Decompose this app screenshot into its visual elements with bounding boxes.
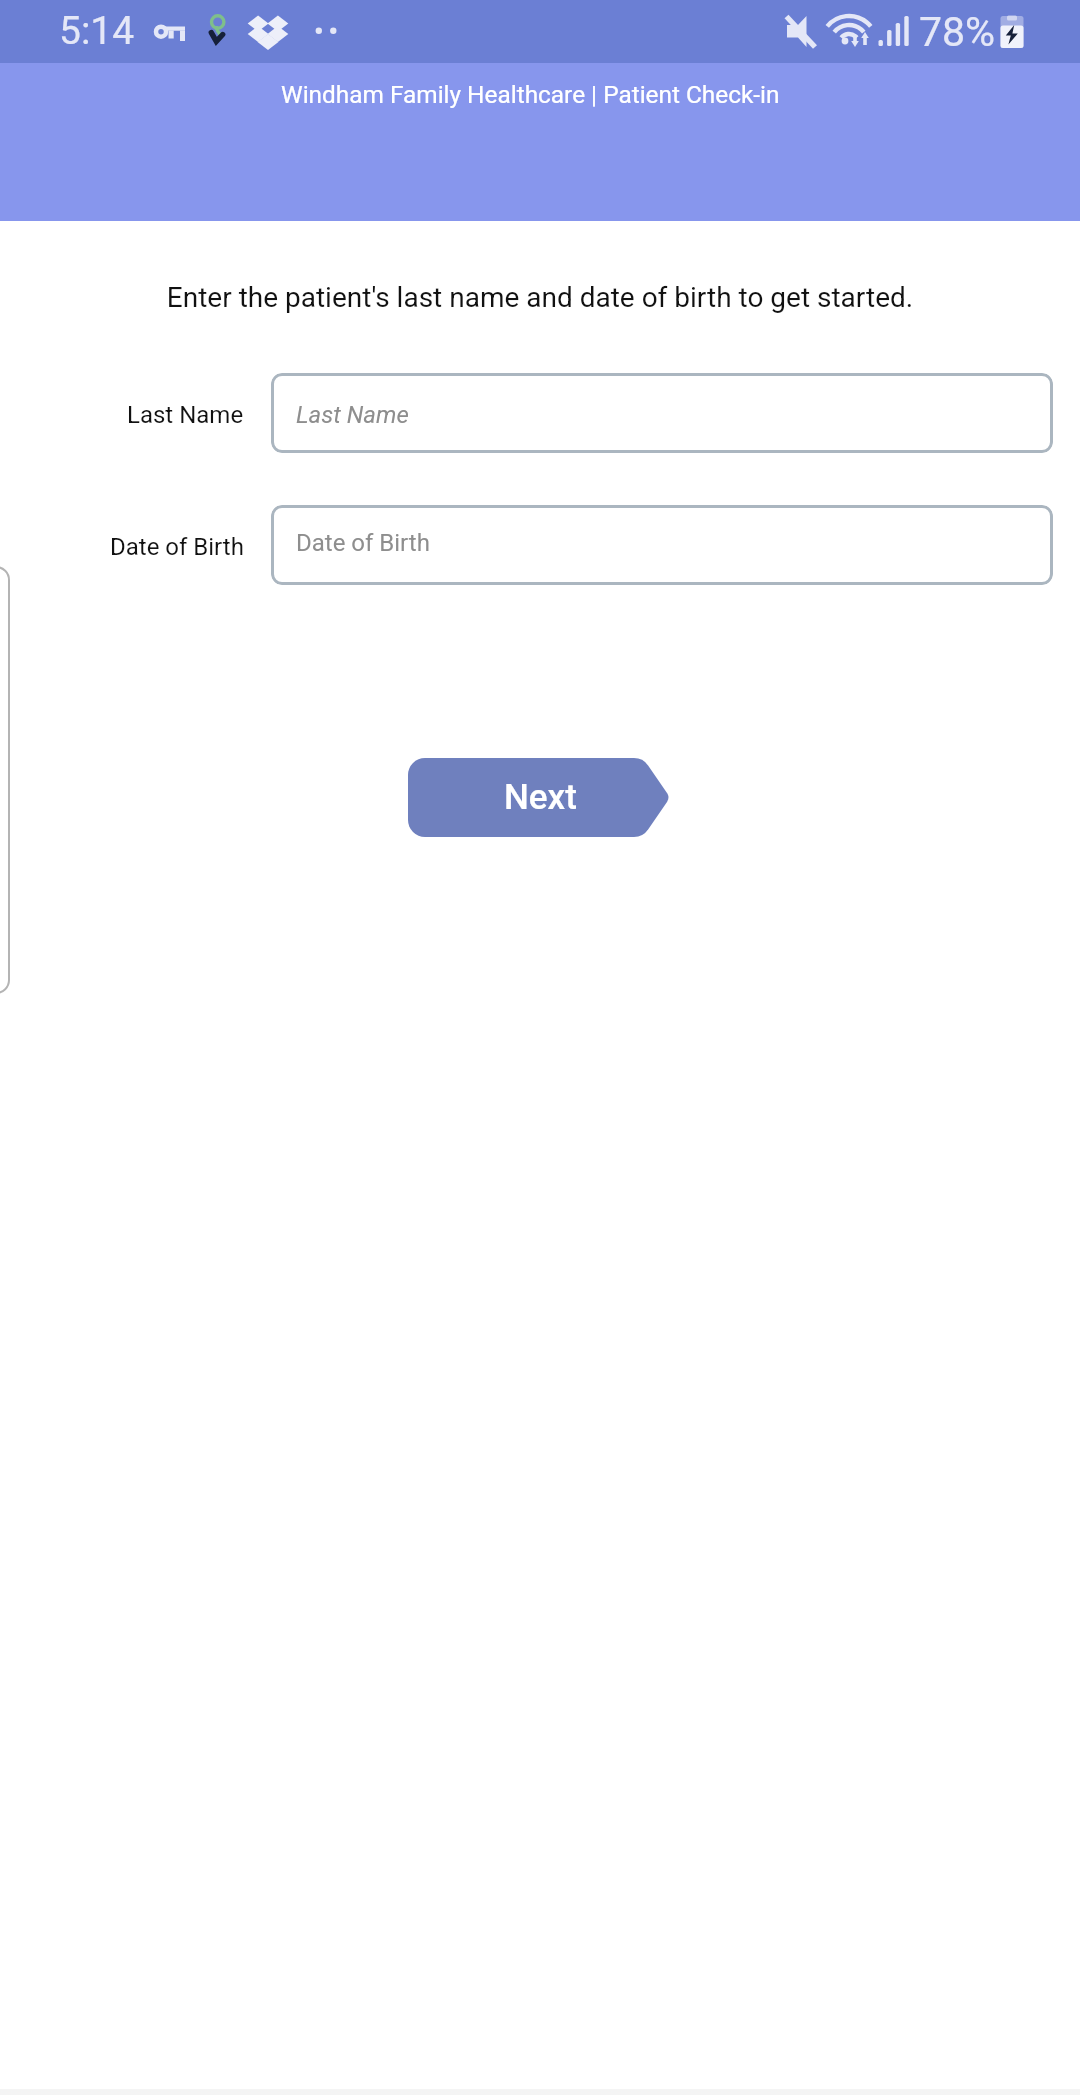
button[interactable]: Last Name: [271, 373, 1053, 453]
button[interactable]: Windham Family Healthcare | Patient Chec…: [0, 63, 1080, 221]
staticText: Last Name: [127, 401, 244, 429]
button[interactable]: Date of Birth: [271, 505, 1053, 585]
staticText: Date of Birth: [296, 529, 430, 557]
staticText: 5:14: [59, 8, 135, 54]
staticText: Last Name: [296, 401, 409, 429]
staticText: Date of Birth: [110, 533, 244, 561]
staticText: 78%: [919, 8, 996, 56]
other: Status icons: [0, 0, 1080, 63]
staticText: Enter the patient's last name and date o…: [0, 281, 1080, 314]
button[interactable]: Next: [408, 758, 670, 837]
staticText: Windham Family Healthcare | Patient Chec…: [281, 80, 780, 109]
staticText: Next: [504, 777, 577, 818]
